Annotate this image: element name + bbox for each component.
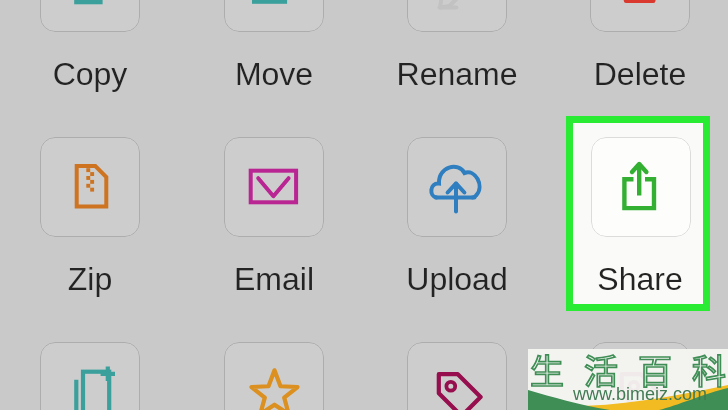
button[interactable]: Zip [40, 137, 140, 237]
staticText: Share [550, 261, 728, 303]
staticText: Zip [0, 261, 180, 303]
button[interactable]: Copy [40, 0, 140, 32]
staticText: Delete [550, 56, 728, 98]
staticText: Move [184, 56, 364, 98]
staticText: Email [184, 261, 364, 303]
staticText: 生活百科 [530, 345, 728, 395]
button[interactable]: Share [566, 116, 710, 311]
button[interactable]: Rename [407, 0, 507, 32]
button[interactable]: Email [224, 137, 324, 237]
button[interactable]: Upload [407, 137, 507, 237]
button[interactable]: Label [590, 342, 690, 410]
staticText: Rename [367, 56, 547, 98]
button[interactable]: Move [224, 0, 324, 32]
staticText: Upload [367, 261, 547, 303]
button[interactable]: Duplicate [40, 342, 140, 410]
button[interactable]: Favorite [224, 342, 324, 410]
button[interactable]: Tag [407, 342, 507, 410]
button[interactable]: Delete [590, 0, 690, 32]
staticText: Copy [0, 56, 180, 98]
staticText: www.bimeiz.com [573, 384, 728, 410]
